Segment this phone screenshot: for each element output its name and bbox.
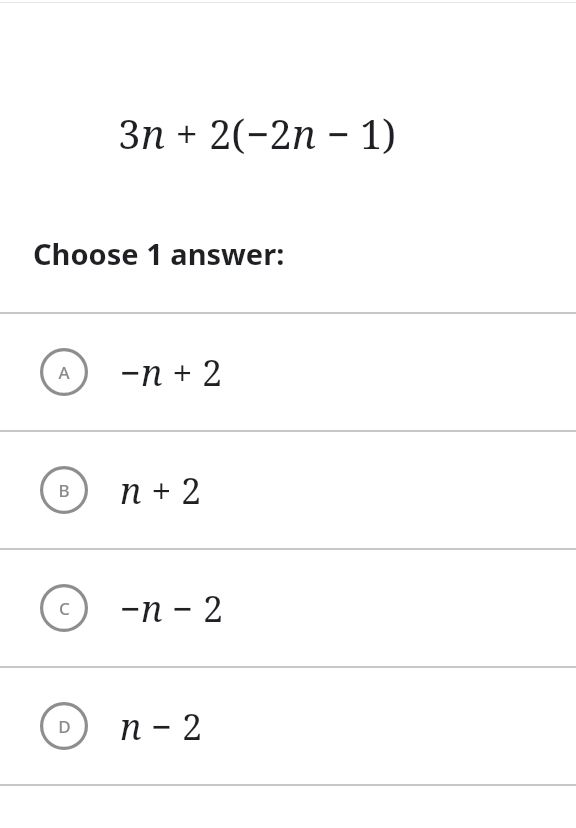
staticText: 2	[202, 348, 223, 397]
staticText: 1)	[360, 106, 397, 160]
staticText: B	[58, 479, 70, 502]
staticText: −	[142, 702, 182, 751]
staticText: C	[59, 597, 70, 620]
staticText: −	[316, 106, 360, 160]
button[interactable]: B	[0, 432, 576, 548]
button[interactable]: A	[0, 314, 576, 430]
button[interactable]: D	[0, 668, 576, 784]
staticText: n	[141, 106, 165, 160]
staticText: n	[120, 702, 142, 751]
staticText: +	[163, 348, 202, 397]
staticText: −	[120, 584, 141, 633]
staticText: Choose 1 answer:	[33, 234, 285, 273]
staticText: 2	[203, 584, 224, 633]
staticText: +	[142, 466, 181, 515]
staticText: +	[165, 106, 209, 160]
staticText: n	[141, 348, 163, 397]
staticText: 2(	[209, 106, 246, 160]
staticText: 2	[182, 702, 203, 751]
staticText: n	[141, 584, 163, 633]
staticText: 3	[118, 106, 141, 160]
staticText: 2	[181, 466, 202, 515]
staticText: n	[292, 106, 316, 160]
staticText: A	[58, 361, 70, 384]
staticText: D	[58, 715, 71, 738]
staticText: −	[120, 348, 141, 397]
staticText: −	[163, 584, 203, 633]
staticText: n	[120, 466, 142, 515]
staticText: −2	[246, 106, 292, 160]
button[interactable]: C	[0, 550, 576, 666]
